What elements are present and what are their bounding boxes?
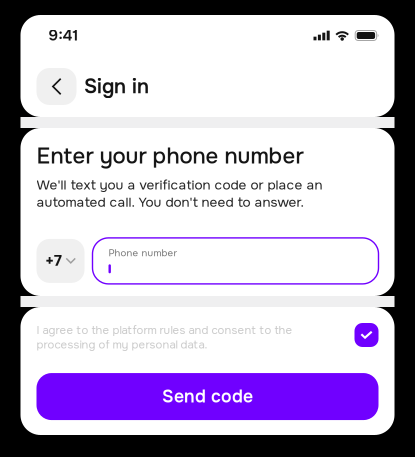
button[interactable]: Send code [36, 373, 378, 420]
staticText: 9:41 [48, 26, 78, 45]
button[interactable]: Back [36, 68, 76, 105]
staticText: Sign in [84, 74, 149, 99]
staticText: I agree to the platform rules and consen… [36, 323, 292, 352]
button[interactable]: +7 [36, 239, 84, 283]
button[interactable]: Phone number [92, 238, 378, 284]
staticText: Phone number [108, 247, 177, 259]
staticText: Send code [162, 385, 253, 408]
staticText: +7 [45, 252, 62, 270]
staticText: Enter your phone number [36, 142, 303, 170]
button[interactable]: Agree to terms [354, 323, 378, 347]
staticText: We'll text you a verification code or pl… [36, 176, 322, 211]
